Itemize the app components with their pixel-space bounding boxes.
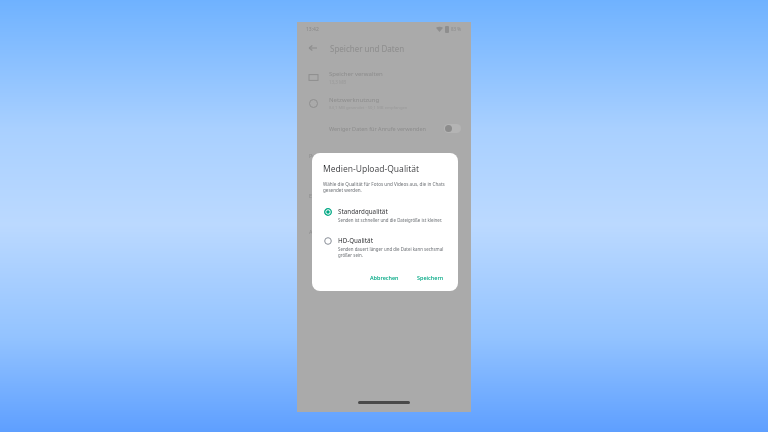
staticText: Proxy <box>309 152 324 159</box>
staticText: Senden ist schneller und die Dateigröße … <box>338 217 442 223</box>
button[interactable]: HD-Qualität <box>312 233 458 259</box>
staticText: 83 % <box>451 26 462 32</box>
button[interactable]: Speichern <box>411 271 450 284</box>
staticText: 13,3 MB <box>329 79 347 85</box>
button[interactable]: Weniger Daten für Anrufe verwenden <box>297 116 471 140</box>
staticText: E <box>309 192 313 199</box>
staticText: Abbrechen <box>370 274 399 281</box>
staticText: HD-Qualität <box>338 236 374 244</box>
button[interactable]: Speicher verwalten <box>297 64 471 90</box>
staticText: Speicher und Daten <box>330 43 405 54</box>
staticText: Medien-Upload-Qualität <box>323 163 420 175</box>
staticText: Senden dauert länger und die Datei kann … <box>338 246 448 258</box>
staticText: Weniger Daten für Anrufe verwenden <box>329 125 444 132</box>
staticText: 84,1 MB gesendet · 50,1 MB empfangen <box>329 105 408 111</box>
button[interactable]: Standardqualität <box>312 204 458 224</box>
staticText: Wähle die Qualität für Fotos und Videos … <box>323 181 446 193</box>
button[interactable]: Zurück <box>305 40 321 56</box>
staticText: A <box>309 228 313 235</box>
staticText: Netzwerknutzung <box>329 96 380 104</box>
staticText: 13:42 <box>306 26 319 33</box>
staticText: Speichern <box>417 274 444 281</box>
button[interactable]: Abbrechen <box>364 271 405 284</box>
staticText: Standardqualität <box>338 207 388 215</box>
staticText: Speicher verwalten <box>329 70 383 78</box>
button[interactable]: Netzwerknutzung <box>297 90 471 116</box>
